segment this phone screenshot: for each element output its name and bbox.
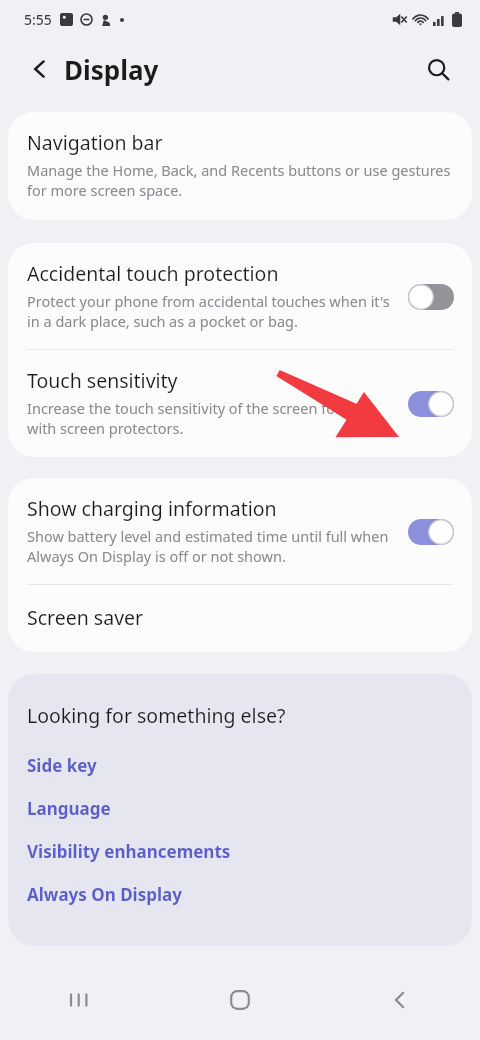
button[interactable]: Always On Display <box>27 873 452 916</box>
button[interactable]: Touch sensitivity <box>8 350 472 457</box>
staticText: Protect your phone from accidental touch… <box>27 291 398 332</box>
button[interactable]: Screen saver <box>8 585 472 652</box>
staticText: Display <box>64 52 159 87</box>
staticText: Screen saver <box>27 604 144 631</box>
staticText: Always On Display <box>27 883 182 906</box>
staticText: Manage the Home, Back, and Recents butto… <box>27 160 452 201</box>
staticText: Looking for something else? <box>27 702 286 729</box>
button[interactable]: Home <box>160 960 320 1040</box>
button[interactable]: Accidental touch protection <box>8 243 472 349</box>
button[interactable]: Recents <box>0 960 160 1040</box>
staticText: Visibility enhancements <box>27 840 231 863</box>
staticText: Language <box>27 797 111 820</box>
staticText: Side key <box>27 754 97 777</box>
staticText: Show battery level and estimated time un… <box>27 526 398 567</box>
staticText: Touch sensitivity <box>27 367 178 394</box>
staticText: Increase the touch sensitivity of the sc… <box>27 398 398 439</box>
button[interactable]: Show charging information <box>8 478 472 584</box>
button[interactable]: Back <box>20 49 60 89</box>
button[interactable]: Visibility enhancements <box>27 830 452 873</box>
staticText: 5:55 <box>24 10 52 29</box>
button[interactable]: Navigation bar <box>8 112 472 220</box>
button[interactable]: Back <box>320 960 480 1040</box>
button[interactable]: Toggle on <box>408 391 454 417</box>
staticText: Show charging information <box>27 495 277 522</box>
staticText: Accidental touch protection <box>27 260 279 287</box>
button[interactable]: Search <box>418 49 458 89</box>
staticText: Navigation bar <box>27 129 163 156</box>
button[interactable]: Toggle on <box>408 519 454 545</box>
button[interactable]: Language <box>27 787 452 830</box>
button[interactable]: Toggle off <box>408 284 454 310</box>
button[interactable]: Side key <box>27 744 452 787</box>
